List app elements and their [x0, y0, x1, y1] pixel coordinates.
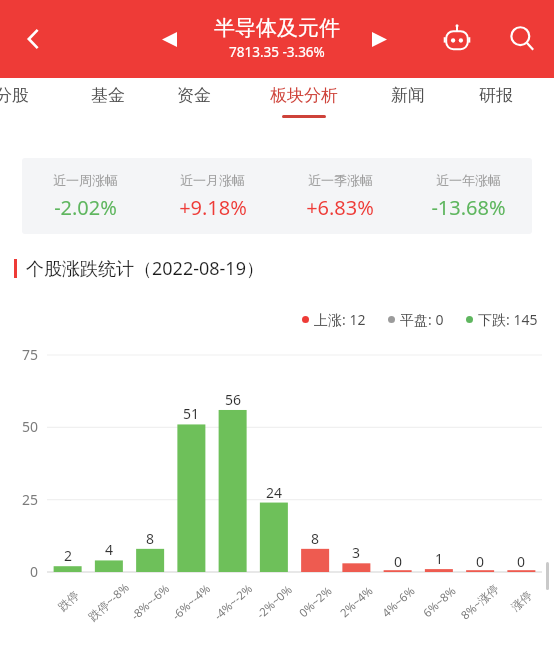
staticText: 分股 — [0, 85, 29, 106]
staticText: 25 — [22, 490, 39, 509]
staticText: 3 — [352, 543, 361, 562]
staticText: 8 — [146, 529, 155, 548]
button[interactable]: 分股 — [0, 78, 38, 134]
button[interactable]: 新闻 — [372, 78, 444, 134]
button[interactable]: Back — [10, 15, 58, 63]
button[interactable]: 下跌: 145 — [466, 310, 538, 329]
staticText: +9.18% — [179, 194, 247, 221]
staticText: 跌停~-8% — [85, 579, 133, 625]
staticText: -2.02% — [54, 194, 117, 221]
staticText: 涨停 — [508, 588, 535, 614]
staticText: 56 — [225, 390, 242, 409]
staticText: 8 — [311, 529, 320, 548]
staticText: 1 — [435, 549, 444, 568]
staticText: 7813.35 -3.36% — [229, 43, 325, 61]
staticText: 资金 — [177, 85, 211, 106]
button[interactable]: 平盘: 0 — [388, 310, 444, 329]
staticText: 基金 — [91, 85, 125, 106]
staticText: +6.83% — [306, 194, 374, 221]
staticText: 跌停 — [55, 588, 82, 614]
button[interactable]: 资金 — [158, 78, 230, 134]
staticText: 近一周涨幅 — [53, 172, 118, 188]
staticText: 板块分析 — [270, 85, 338, 106]
staticText: 2 — [64, 546, 73, 565]
button[interactable]: 上涨: 12 — [302, 310, 366, 329]
staticText: 近一年涨幅 — [436, 172, 501, 188]
staticText: -2%~0% — [253, 582, 296, 622]
staticText: 半导体及元件 — [214, 15, 340, 41]
staticText: 8%~涨停 — [458, 581, 502, 623]
staticText: 研报 — [479, 85, 513, 106]
staticText: 近一月涨幅 — [180, 172, 245, 188]
staticText: -4%~-2% — [211, 580, 256, 624]
button[interactable]: 板块分析 — [248, 78, 360, 134]
staticText: 近一季涨幅 — [308, 172, 373, 188]
staticText: 新闻 — [391, 85, 425, 106]
staticText: -6%~-4% — [169, 580, 214, 624]
staticText: 0 — [30, 562, 39, 581]
button[interactable]: Search — [498, 15, 546, 63]
staticText: 0%~2% — [296, 583, 335, 621]
staticText: 2%~4% — [337, 583, 376, 621]
button[interactable]: 近一季涨幅 — [276, 172, 404, 221]
staticText: 平盘: 0 — [400, 310, 444, 329]
staticText: 24 — [266, 483, 283, 502]
button[interactable]: Previous sector — [146, 16, 192, 62]
button[interactable]: AI assistant — [434, 16, 480, 62]
staticText: 75 — [22, 345, 39, 364]
staticText: 上涨: 12 — [314, 310, 366, 329]
staticText: 0 — [517, 552, 526, 571]
staticText: 51 — [183, 404, 200, 423]
staticText: -13.68% — [431, 194, 506, 221]
button[interactable]: 近一周涨幅 — [22, 172, 149, 221]
staticText: -8%~-6% — [128, 580, 173, 624]
staticText: 6%~8% — [420, 583, 459, 621]
button[interactable]: Next sector — [356, 16, 402, 62]
staticText: 4%~6% — [379, 583, 418, 621]
staticText: 下跌: 145 — [478, 310, 538, 329]
button[interactable]: 近一年涨幅 — [404, 172, 532, 221]
button[interactable]: 近一月涨幅 — [149, 172, 276, 221]
button[interactable]: 基金 — [72, 78, 144, 134]
staticText: 0 — [476, 552, 485, 571]
button[interactable]: 研报 — [460, 78, 532, 134]
staticText: 50 — [22, 417, 39, 436]
staticText: 个股涨跌统计（2022-08-19） — [26, 256, 264, 281]
staticText: 0 — [394, 552, 403, 571]
staticText: 4 — [105, 540, 114, 559]
